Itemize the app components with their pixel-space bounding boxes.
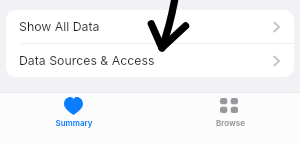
staticText: Browse [216, 118, 245, 128]
button[interactable]: Summary [34, 92, 114, 144]
staticText: Data Sources & Access [19, 53, 155, 68]
staticText: Summary [55, 118, 93, 128]
staticText: Show All Data [19, 19, 100, 34]
button[interactable]: Browse [190, 92, 270, 144]
button[interactable]: Show All Data [6, 10, 294, 43]
button[interactable]: Data Sources & Access [6, 44, 294, 77]
